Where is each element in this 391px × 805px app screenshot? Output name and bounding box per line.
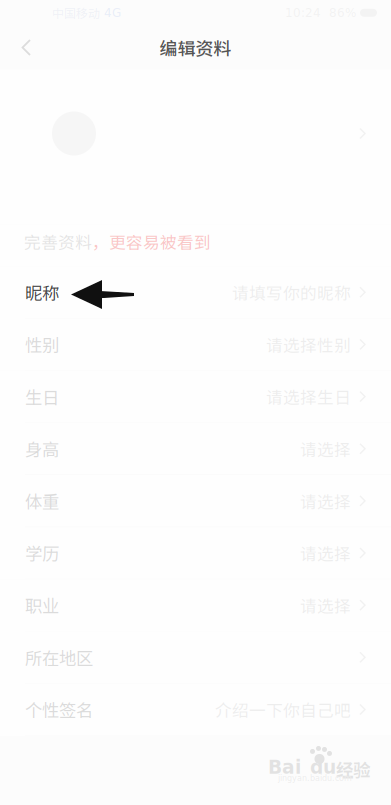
button[interactable]: 昵称 xyxy=(0,266,391,319)
staticText: 体重 xyxy=(25,488,59,513)
staticText: 请选择 xyxy=(300,593,351,617)
button[interactable]: 性别 xyxy=(0,319,391,371)
staticText: ，更容易被看到 xyxy=(92,229,211,253)
staticText: du xyxy=(310,756,336,778)
staticText: 请选择 xyxy=(300,541,351,565)
staticText: 请选择生日 xyxy=(266,384,351,409)
button[interactable]: 所在地区 xyxy=(0,631,391,684)
staticText: 4G xyxy=(100,6,121,20)
staticText: 完善资料 xyxy=(24,229,92,253)
button[interactable]: Back xyxy=(6,27,46,67)
staticText: 请选择性别 xyxy=(266,332,351,356)
staticText: 个性签名 xyxy=(25,697,93,722)
staticText: 职业 xyxy=(25,593,59,618)
button[interactable]: 生日 xyxy=(0,371,391,423)
staticText: 请填写你的昵称 xyxy=(232,280,351,304)
staticText: 学历 xyxy=(25,540,59,566)
staticText: 中国移动 xyxy=(52,4,100,21)
button[interactable]: 学历 xyxy=(0,527,391,579)
staticText: 性别 xyxy=(25,332,59,357)
staticText: 请选择 xyxy=(300,437,351,461)
button[interactable]: 职业 xyxy=(0,579,391,631)
staticText: Bai xyxy=(268,756,301,778)
button[interactable]: 体重 xyxy=(0,475,391,527)
staticText: 昵称 xyxy=(25,280,59,305)
button[interactable]: 身高 xyxy=(0,423,391,475)
staticText: 经验 xyxy=(336,756,370,782)
staticText: 身高 xyxy=(25,436,59,461)
staticText: 生日 xyxy=(25,384,59,409)
staticText: 所在地区 xyxy=(25,645,93,670)
staticText: 请选择 xyxy=(300,489,351,513)
staticText: 介绍一下你自己吧 xyxy=(215,697,351,721)
staticText: 10:24 xyxy=(285,6,321,20)
staticText: jingyan.baidu.com xyxy=(278,773,352,783)
button[interactable]: 个性签名 xyxy=(0,684,391,736)
staticText: 编辑资料 xyxy=(159,34,231,61)
